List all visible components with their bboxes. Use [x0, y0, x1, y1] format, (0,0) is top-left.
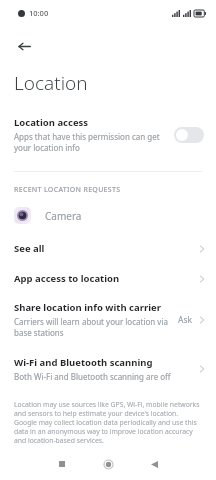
staticText: Share location info with carrier	[14, 301, 161, 314]
staticText: App access to location	[14, 272, 120, 285]
staticText: Ask	[178, 314, 193, 326]
button[interactable]: Wi-Fi and Bluetooth scanning	[0, 356, 216, 382]
staticText: Apps that have this permission can get y…	[14, 131, 168, 153]
staticText: Both Wi-Fi and Bluetooth scanning are of…	[14, 371, 171, 382]
staticText: Carriers will learn about your location …	[14, 316, 175, 338]
button[interactable]: Recent apps	[44, 448, 80, 480]
button[interactable]: See all	[0, 242, 216, 255]
button[interactable]: Share location info with carrier	[0, 301, 216, 338]
button[interactable]: Home	[90, 448, 126, 480]
staticText: Camera	[45, 209, 82, 223]
staticText: Location may use sources like GPS, Wi-Fi…	[14, 400, 202, 445]
button[interactable]: Location access toggle	[174, 127, 204, 143]
staticText: See all	[14, 242, 45, 255]
button[interactable]: App access to location	[0, 272, 216, 285]
button[interactable]: Back	[136, 448, 172, 480]
button[interactable]: Location access	[0, 114, 216, 159]
staticText: Wi-Fi and Bluetooth scanning	[14, 356, 153, 369]
staticText: Location access	[14, 116, 89, 129]
button[interactable]: Back	[8, 30, 40, 62]
staticText: RECENT LOCATION REQUESTS	[14, 185, 121, 195]
staticText: 10:00	[29, 8, 49, 18]
button[interactable]: Camera	[0, 205, 216, 226]
staticText: Location	[14, 70, 88, 96]
